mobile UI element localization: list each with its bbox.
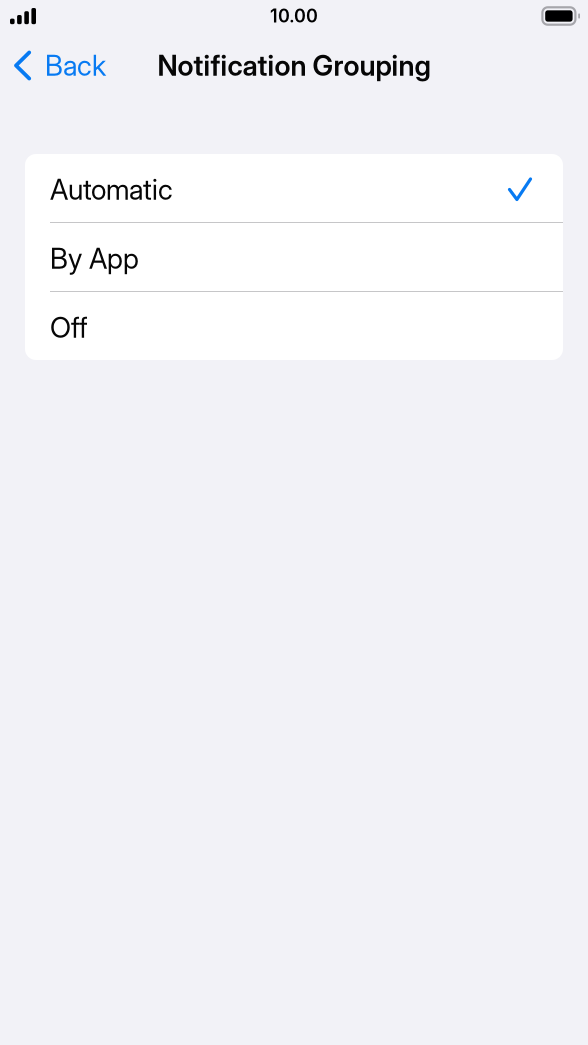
staticText: 10.00: [270, 5, 318, 27]
staticText: Notification Grouping: [157, 49, 430, 82]
button[interactable]: Off: [25, 292, 563, 360]
button[interactable]: Back: [0, 49, 106, 82]
button[interactable]: Automatic: [25, 154, 563, 222]
staticText: Off: [50, 311, 88, 344]
staticText: By App: [50, 242, 139, 275]
button[interactable]: By App: [25, 223, 563, 291]
staticText: Back: [45, 49, 106, 82]
staticText: Automatic: [50, 173, 173, 206]
